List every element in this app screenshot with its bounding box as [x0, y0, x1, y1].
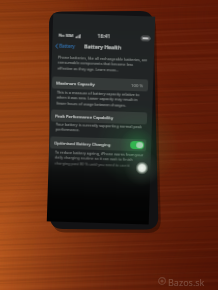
- staticText: Your battery is currently supporting nor…: [56, 122, 142, 135]
- staticText: To reduce battery ageing, iPhone warns f…: [54, 150, 144, 169]
- staticText: Peak Performance Capability: [55, 113, 114, 120]
- staticText: Phone batteries, like all rechargeable b…: [57, 55, 148, 74]
- button[interactable]: Optimised Battery Charging: [50, 136, 146, 151]
- staticText: This is a measure of battery capacity re…: [56, 90, 140, 109]
- staticText: No SIM: [58, 33, 74, 39]
- button[interactable]: Maximum Capacity: [52, 76, 148, 91]
- button[interactable]: Optimised Battery Charging toggle: [130, 141, 144, 149]
- button[interactable]: Battery: [55, 42, 75, 49]
- staticText: Battery Health: [84, 42, 122, 51]
- button[interactable]: No SIM: [47, 13, 155, 224]
- staticText: Bazos.sk: [168, 276, 205, 288]
- staticText: Battery: [59, 43, 75, 49]
- staticText: Optimised Battery Charging: [54, 139, 111, 147]
- staticText: 16:41: [97, 33, 111, 40]
- staticText: Maximum Capacity: [56, 80, 95, 87]
- button[interactable]: Peak Performance Capability: [51, 109, 147, 124]
- staticText: 100 %: [131, 82, 144, 88]
